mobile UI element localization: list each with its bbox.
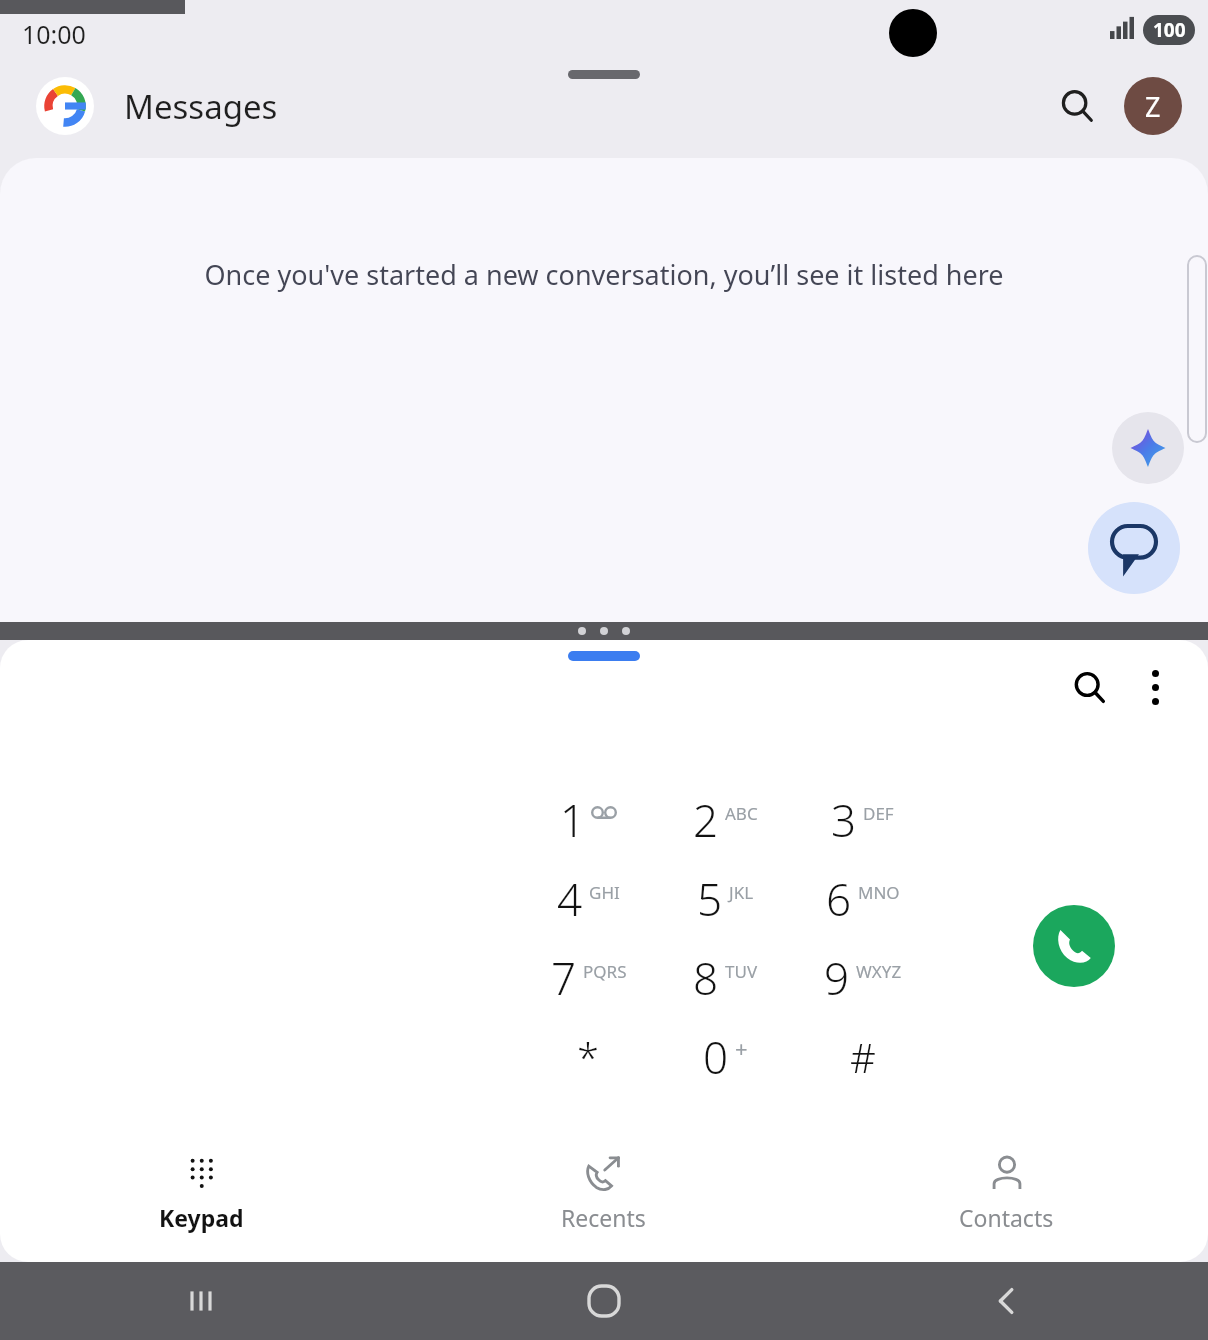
staticText: 10:00 [22, 17, 86, 51]
button[interactable]: Back [805, 1262, 1208, 1340]
staticText: 3 [831, 790, 857, 850]
staticText: * [577, 1030, 600, 1084]
button[interactable]: Start chat [1088, 502, 1180, 594]
button[interactable]: Home [402, 1262, 805, 1340]
staticText: Z [1145, 88, 1161, 125]
button[interactable]: More options [1122, 654, 1188, 720]
button[interactable]: Gemini [1112, 412, 1184, 484]
staticText: 4 [557, 869, 583, 929]
staticText: Once you've started a new conversation, … [204, 256, 1004, 293]
staticText: 1 [560, 790, 586, 850]
staticText: PQRS [583, 960, 627, 983]
staticText: Recents [561, 1202, 646, 1233]
staticText: Keypad [159, 1202, 244, 1233]
button[interactable]: Call [1033, 905, 1115, 987]
staticText: MNO [858, 881, 900, 904]
staticText: ABC [725, 802, 758, 825]
button[interactable]: 2 [657, 780, 794, 859]
button[interactable]: Search [1044, 73, 1110, 139]
staticText: Contacts [959, 1202, 1054, 1233]
staticText: + [735, 1033, 748, 1063]
button[interactable]: * [520, 1017, 657, 1096]
button[interactable]: Account [1124, 77, 1182, 135]
button[interactable]: 6 [794, 859, 931, 938]
staticText: TUV [725, 960, 758, 983]
button[interactable]: 4 [520, 859, 657, 938]
staticText: 2 [693, 790, 719, 850]
button[interactable]: 0 [657, 1017, 794, 1096]
button[interactable]: Recents [402, 1142, 805, 1244]
button[interactable]: Search contacts [1056, 654, 1122, 720]
staticText: WXYZ [856, 960, 902, 983]
staticText: 9 [824, 948, 850, 1008]
staticText: DEF [863, 802, 894, 825]
button[interactable]: 9 [794, 938, 931, 1017]
button[interactable]: # [794, 1017, 931, 1096]
button[interactable]: 1 [520, 780, 657, 859]
button[interactable]: Recent apps [0, 1262, 402, 1340]
button[interactable]: 8 [657, 938, 794, 1017]
staticText: JKL [729, 881, 754, 904]
button[interactable]: Keypad [0, 1142, 402, 1244]
staticText: 0 [703, 1027, 729, 1087]
staticText: Messages [124, 84, 278, 129]
button[interactable]: 7 [520, 938, 657, 1017]
staticText: 5 [697, 869, 723, 929]
button[interactable]: 5 [657, 859, 794, 938]
staticText: GHI [589, 881, 620, 904]
staticText: 100 [1153, 17, 1186, 43]
staticText: # [850, 1030, 876, 1084]
staticText: 6 [826, 869, 852, 929]
button[interactable]: 3 [794, 780, 931, 859]
button[interactable]: Contacts [805, 1142, 1208, 1244]
staticText: 7 [551, 948, 577, 1008]
staticText: 8 [693, 948, 719, 1008]
